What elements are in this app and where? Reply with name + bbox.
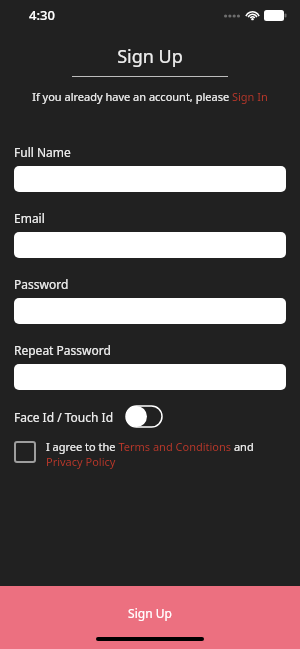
button[interactable]: Sign Up (0, 586, 300, 649)
staticText: Full Name (14, 144, 71, 160)
button[interactable]: Enable Face Id or Touch Id (126, 406, 162, 427)
staticText: If you already have an account, please S… (32, 89, 268, 104)
staticText: Sign Up (0, 44, 300, 69)
button[interactable]: Email (14, 232, 286, 258)
staticText: Password (14, 276, 69, 292)
other: Agree to terms checkbox (14, 441, 36, 463)
button[interactable]: Password (14, 298, 286, 324)
button[interactable]: If you already have an account, please S… (0, 89, 300, 104)
button[interactable]: Repeat Password (14, 364, 286, 390)
staticText: Email (14, 210, 45, 226)
staticText: I agree to the Terms and Conditions and … (46, 439, 286, 469)
staticText: Face Id / Touch Id (14, 409, 114, 425)
staticText: Repeat Password (14, 342, 111, 358)
staticText: 4:30 (29, 6, 55, 24)
button[interactable]: Face Id / Touch Id (14, 406, 286, 427)
staticText: Sign Up (0, 605, 300, 621)
button[interactable]: Full Name (14, 166, 286, 192)
button[interactable]: Agree to terms checkbox (14, 439, 286, 469)
